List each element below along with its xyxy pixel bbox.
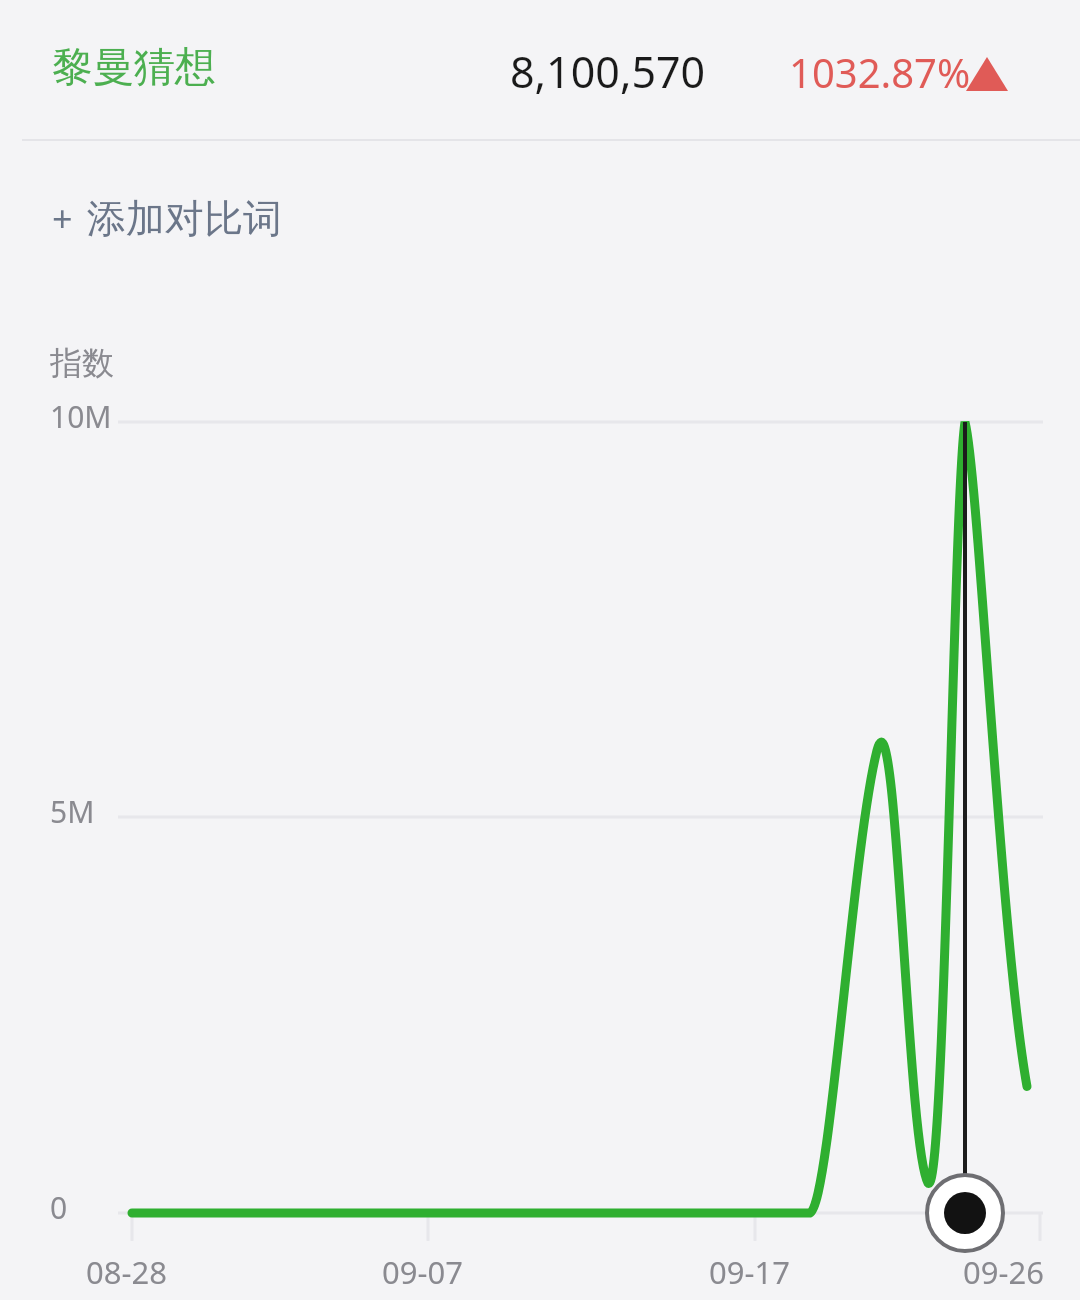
staticText: 10M [50, 396, 112, 437]
staticText: 09-17 [709, 1251, 790, 1293]
button[interactable]: 黎曼猜想 [0, 0, 1080, 140]
staticText: 09-26 [963, 1251, 1044, 1293]
staticText: 5M [50, 791, 95, 832]
staticText: 1032.87% [789, 45, 971, 99]
staticText: 添加对比词 [87, 194, 282, 243]
staticText: 黎曼猜想 [52, 42, 216, 94]
button[interactable]: + [52, 194, 282, 243]
staticText: 0 [50, 1187, 68, 1228]
staticText: 08-28 [86, 1251, 167, 1293]
other: Rising [966, 57, 1008, 91]
staticText: 8,100,570 [510, 42, 706, 101]
staticText: 指数 [50, 343, 114, 383]
staticText: 09-07 [382, 1251, 463, 1293]
staticText: + [52, 194, 73, 243]
